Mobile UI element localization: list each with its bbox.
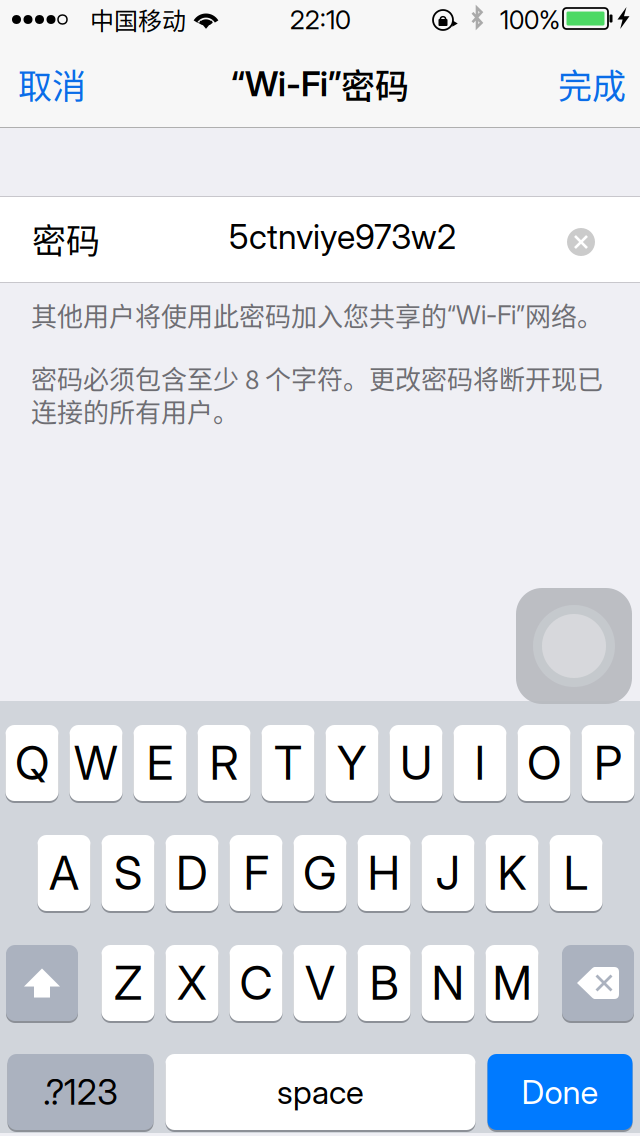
staticText: K xyxy=(497,845,526,901)
button[interactable]: 取消 xyxy=(0,40,100,128)
button[interactable]: M xyxy=(485,944,538,1022)
staticText: U xyxy=(400,735,432,791)
staticText: B xyxy=(369,955,398,1011)
staticText: S xyxy=(114,845,142,901)
staticText: E xyxy=(146,735,173,791)
staticText: Done xyxy=(521,1072,598,1112)
button[interactable]: Clear text xyxy=(554,215,608,269)
button[interactable]: X xyxy=(165,944,218,1022)
staticText: F xyxy=(243,845,268,901)
staticText: I xyxy=(474,735,485,791)
button[interactable]: Shift xyxy=(6,944,78,1021)
staticText: W xyxy=(74,735,118,791)
staticText: J xyxy=(435,845,460,901)
staticText: 完成 xyxy=(558,59,626,109)
button[interactable]: O xyxy=(517,724,570,802)
staticText: O xyxy=(527,735,561,791)
button[interactable]: Z xyxy=(101,944,154,1022)
staticText: 22:10 xyxy=(290,4,351,35)
staticText: space xyxy=(277,1072,364,1112)
button[interactable]: B xyxy=(357,944,410,1022)
button[interactable]: .?123 xyxy=(7,1053,153,1131)
staticText: L xyxy=(563,845,588,901)
button[interactable]: D xyxy=(165,834,218,912)
button[interactable]: J xyxy=(421,834,474,912)
staticText: 其他用户将使用此密码加入您共享的 xyxy=(31,296,447,334)
staticText: T xyxy=(274,735,302,791)
staticText: “Wi-Fi” xyxy=(231,63,341,104)
button[interactable]: U xyxy=(389,724,442,802)
staticText: 网络。 xyxy=(525,296,603,334)
button[interactable]: N xyxy=(421,944,474,1022)
staticText: Q xyxy=(15,735,49,791)
button[interactable]: Q xyxy=(5,724,58,802)
staticText: R xyxy=(209,735,238,791)
staticText: 5ctnviye973w2 xyxy=(229,216,456,257)
staticText: M xyxy=(492,955,531,1011)
button[interactable]: 完成 xyxy=(544,40,640,128)
staticText: 取消 xyxy=(18,59,86,109)
staticText: 连接的所有用户。 xyxy=(31,392,239,430)
button[interactable]: S xyxy=(101,834,154,912)
staticText: H xyxy=(367,845,400,901)
button[interactable]: Done xyxy=(487,1053,632,1131)
staticText: 密码必须包含至少 8 个字符。更改密码将断开现已 xyxy=(31,359,603,397)
button[interactable]: K xyxy=(485,834,538,912)
button[interactable]: I xyxy=(453,724,506,802)
staticText: D xyxy=(176,845,208,901)
button[interactable]: space xyxy=(165,1053,475,1131)
button[interactable]: F xyxy=(229,834,282,912)
staticText: N xyxy=(431,955,464,1011)
button[interactable]: C xyxy=(229,944,282,1022)
button[interactable]: G xyxy=(293,834,346,912)
staticText: 中国移动 xyxy=(90,2,186,37)
staticText: G xyxy=(303,845,337,901)
staticText: A xyxy=(49,845,79,901)
staticText: Y xyxy=(337,735,367,791)
button[interactable]: Y xyxy=(325,724,378,802)
staticText: 100% xyxy=(500,5,560,35)
button[interactable]: T xyxy=(261,724,314,802)
staticText: X xyxy=(177,955,207,1011)
staticText: .?123 xyxy=(43,1071,118,1113)
staticText: Z xyxy=(114,955,142,1011)
button[interactable]: L xyxy=(549,834,602,912)
staticText: “Wi-Fi” xyxy=(447,299,525,331)
staticText: C xyxy=(239,955,272,1011)
button[interactable]: R xyxy=(197,724,250,802)
button[interactable]: P xyxy=(581,724,634,802)
button[interactable]: H xyxy=(357,834,410,912)
staticText: V xyxy=(305,955,335,1011)
staticText: 密码 xyxy=(341,59,409,109)
button[interactable]: A xyxy=(37,834,90,912)
button[interactable]: W xyxy=(69,724,122,802)
button[interactable]: E xyxy=(133,724,186,802)
staticText: P xyxy=(594,735,622,791)
button[interactable]: Delete xyxy=(562,944,634,1021)
button[interactable]: V xyxy=(293,944,346,1022)
button[interactable]: AssistiveTouch xyxy=(516,588,632,704)
staticText: 密码 xyxy=(32,214,100,263)
